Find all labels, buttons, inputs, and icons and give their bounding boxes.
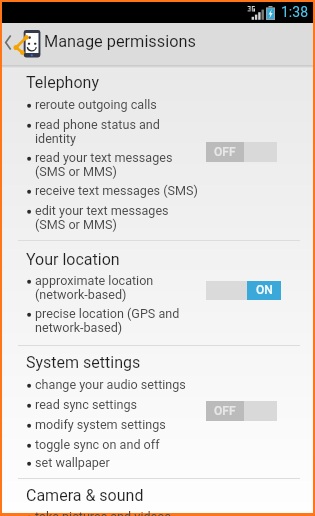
button[interactable]: Permission toggle, on xyxy=(206,281,281,300)
staticText: read sync settings xyxy=(35,398,138,412)
staticText: OFF xyxy=(214,405,236,418)
staticText: edit your text messages (SMS or MMS) xyxy=(35,204,169,232)
button[interactable]: Permission toggle, off xyxy=(206,142,277,162)
staticText: Manage permissions xyxy=(44,32,196,51)
button[interactable]: Manage permissions xyxy=(2,23,313,65)
staticText: 1:38 xyxy=(281,5,308,20)
staticText: receive text messages (SMS) xyxy=(35,184,198,198)
staticText: System settings xyxy=(26,353,141,372)
staticText: change your audio settings xyxy=(35,378,186,392)
staticText: Camera & sound xyxy=(26,486,144,505)
button[interactable]: Telephony xyxy=(26,73,99,92)
staticText: modify system settings xyxy=(35,418,166,432)
button[interactable]: System settings xyxy=(26,353,141,372)
staticText: reroute outgoing calls xyxy=(35,98,157,112)
staticText: Your location xyxy=(26,250,120,269)
staticText: read phone status and identity xyxy=(35,118,160,146)
staticText: Telephony xyxy=(26,73,99,92)
button[interactable]: Permission toggle, off xyxy=(206,401,277,421)
staticText: precise location (GPS and network-based) xyxy=(35,307,180,335)
staticText: read your text messages (SMS or MMS) xyxy=(35,151,173,179)
button[interactable]: Camera & sound xyxy=(26,486,144,505)
staticText: toggle sync on and off xyxy=(35,438,160,452)
button[interactable]: Your location xyxy=(26,250,120,269)
staticText: approximate location (network-based) xyxy=(35,274,154,302)
staticText: set wallpaper xyxy=(35,456,110,470)
staticText: ON xyxy=(256,284,273,297)
staticText: OFF xyxy=(214,146,236,159)
staticText: take pictures and videos xyxy=(35,510,171,516)
